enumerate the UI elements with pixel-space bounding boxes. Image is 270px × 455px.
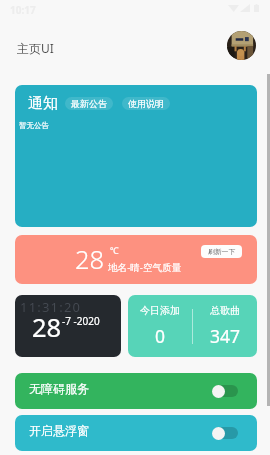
button[interactable]: 通知 [15, 85, 257, 227]
staticText: 0 [155, 324, 166, 348]
button[interactable]: 今日添加 [128, 295, 257, 357]
staticText: 主页UI [17, 40, 54, 56]
staticText: 刷新一下 [208, 247, 236, 256]
staticText: ℃ [110, 244, 119, 256]
staticText: 11:31:20 [20, 298, 82, 316]
staticText: 347 [210, 324, 241, 348]
button[interactable]: 开启悬浮窗 [213, 427, 238, 439]
staticText: 28 [32, 310, 62, 345]
staticText: 使用说明 [128, 98, 164, 109]
staticText: 开启悬浮窗 [29, 423, 89, 438]
staticText: 10:17 [10, 3, 36, 17]
staticText: 28 [75, 242, 105, 277]
button[interactable]: 11:31:20 [15, 295, 121, 357]
staticText: 今日添加 [140, 304, 180, 317]
staticText: -7 -2020 [62, 314, 100, 328]
button[interactable]: 无障碍服务 [15, 373, 257, 409]
button[interactable]: 使用说明 [122, 97, 170, 110]
staticText: 暂无公告 [19, 121, 49, 130]
button[interactable]: 刷新一下 [201, 245, 242, 258]
button[interactable]: Profile [227, 31, 256, 60]
staticText: 无障碍服务 [29, 381, 89, 396]
staticText: 最新公告 [71, 98, 107, 109]
button[interactable]: 28 [15, 235, 257, 284]
button[interactable]: 无障碍服务 [213, 385, 238, 397]
button[interactable]: 最新公告 [65, 97, 113, 110]
staticText: 通知 [28, 94, 58, 113]
button[interactable]: 开启悬浮窗 [15, 415, 257, 451]
staticText: 总歌曲 [210, 304, 240, 317]
staticText: 地名-晴-空气质量 [108, 261, 182, 274]
